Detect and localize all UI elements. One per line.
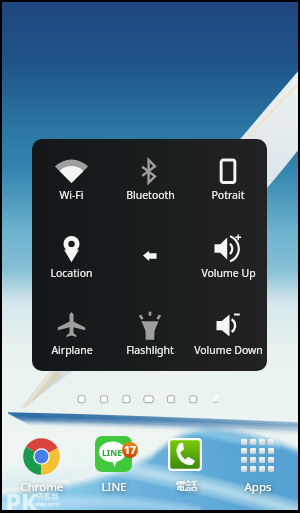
- staticText: Airplane: [51, 343, 93, 357]
- button[interactable]: Volume Up: [189, 217, 267, 294]
- staticText: step.com: [35, 500, 59, 507]
- button[interactable]: LINE: [95, 436, 132, 472]
- staticText: 痞客邦: [36, 492, 59, 501]
- staticText: Wi-Fi: [59, 188, 84, 202]
- staticText: Apps: [244, 479, 272, 495]
- button[interactable]: Bluetooth: [111, 139, 189, 217]
- button[interactable]: Phone: [168, 438, 202, 471]
- staticText: Flashlight: [126, 343, 174, 357]
- staticText: LINE: [102, 447, 122, 459]
- staticText: PK: [5, 485, 38, 513]
- staticText: Potrait: [211, 188, 245, 202]
- staticText: Chrome: [20, 479, 64, 495]
- button[interactable]: Back: [111, 217, 189, 294]
- button[interactable]: Apps: [241, 439, 275, 473]
- staticText: Volume Down: [194, 343, 263, 357]
- button[interactable]: Location: [32, 217, 111, 294]
- staticText: 電話: [175, 479, 198, 493]
- button[interactable]: Volume Down: [189, 294, 267, 371]
- staticText: Volume Up: [201, 266, 256, 280]
- button[interactable]: Potrait: [189, 139, 267, 217]
- staticText: LINE: [101, 479, 127, 495]
- button[interactable]: Airplane mode: [32, 294, 111, 371]
- staticText: 17: [124, 443, 137, 457]
- button[interactable]: Flashlight: [111, 294, 189, 371]
- staticText: Location: [50, 266, 93, 280]
- button[interactable]: Chrome: [23, 438, 60, 475]
- button[interactable]: Wi-Fi: [32, 139, 111, 217]
- staticText: Bluetooth: [126, 188, 175, 202]
